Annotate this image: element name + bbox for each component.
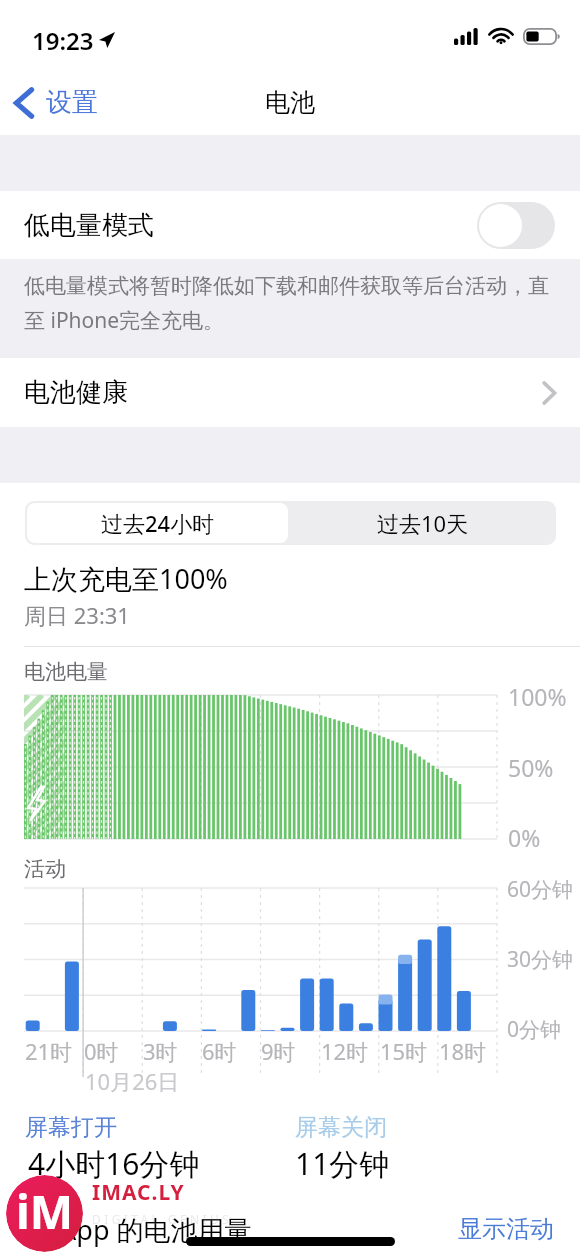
button[interactable]: 低电量模式开关 (477, 202, 555, 249)
staticText: 100% (508, 681, 567, 712)
button[interactable]: 电池健康 (0, 358, 580, 427)
staticText: 11分钟 (295, 1143, 390, 1184)
staticText: 屏幕关闭 (295, 1113, 387, 1142)
button[interactable]: 显示活动 (458, 1211, 554, 1241)
staticText: 30分钟 (507, 945, 574, 974)
staticText: 10月26日 (85, 1066, 180, 1096)
button[interactable]: 过去10天 (290, 501, 556, 545)
staticText: 4小时16分钟 (28, 1143, 200, 1184)
staticText: IMAC.LY (92, 1178, 185, 1207)
staticText: 至 iPhone完全充电。 (24, 306, 225, 335)
staticText: 低电量模式将暂时降低如下载和邮件获取等后台活动，直 (24, 273, 549, 299)
staticText: 18时 (439, 1036, 487, 1066)
staticText: 19:23 (32, 24, 94, 57)
staticText: 电池健康 (24, 376, 128, 409)
staticText: 3时 (143, 1036, 178, 1066)
button[interactable]: 过去24小时 (27, 503, 288, 543)
staticText: 21时 (25, 1036, 73, 1066)
staticText: iM (16, 1180, 74, 1243)
staticText: 过去10天 (377, 508, 469, 538)
staticText: 电池电量 (24, 659, 108, 685)
staticText: 60分钟 (507, 875, 574, 904)
staticText: 6时 (202, 1036, 237, 1066)
staticText: DIGITAL GENIUS (92, 1211, 233, 1227)
staticText: 屏幕打开 (25, 1113, 117, 1142)
staticText: 设置 (46, 86, 98, 119)
staticText: 低电量模式 (24, 209, 154, 242)
staticText: 15时 (380, 1036, 428, 1066)
staticText: 按 App 的电池用量 (25, 1211, 252, 1248)
staticText: 周日 23:31 (24, 600, 130, 630)
staticText: 9时 (261, 1036, 296, 1066)
staticText: 电池 (265, 87, 315, 118)
staticText: 0分钟 (507, 1015, 562, 1044)
staticText: 50% (508, 752, 554, 783)
staticText: 上次充电至100% (24, 560, 228, 597)
staticText: 12时 (321, 1036, 369, 1066)
staticText: 0% (508, 822, 541, 853)
staticText: 0时 (84, 1036, 119, 1066)
button[interactable]: 设置 (0, 80, 110, 125)
staticText: 过去24小时 (101, 508, 215, 538)
staticText: 活动 (24, 856, 66, 882)
